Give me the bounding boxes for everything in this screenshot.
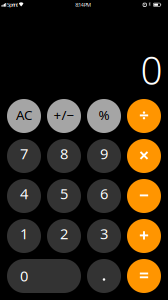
staticText: AC xyxy=(16,106,32,124)
staticText: 5 xyxy=(60,184,68,203)
button[interactable]: 3 xyxy=(87,219,121,253)
staticText: 7 xyxy=(20,144,28,163)
button[interactable]: Plus xyxy=(127,219,161,253)
staticText: 2 xyxy=(60,224,68,243)
staticText: 6 xyxy=(100,184,108,203)
button[interactable]: 2 xyxy=(47,219,81,253)
staticText: 1 xyxy=(20,224,28,243)
staticText: 8:14 PM xyxy=(75,1,91,8)
button[interactable]: 9 xyxy=(87,139,121,173)
button[interactable]: % xyxy=(87,99,121,133)
staticText: 3 xyxy=(100,224,108,243)
button[interactable]: 7 xyxy=(7,139,41,173)
button[interactable]: Divide xyxy=(127,99,161,133)
button[interactable]: Multiply xyxy=(127,139,161,173)
staticText: 9 xyxy=(100,144,108,163)
button[interactable]: AC xyxy=(7,99,41,133)
staticText: % xyxy=(98,106,109,124)
button[interactable]: 0 xyxy=(7,259,81,293)
button[interactable]: 8 xyxy=(47,139,81,173)
button[interactable]: 1 xyxy=(7,219,41,253)
staticText: 0 xyxy=(140,44,162,95)
staticText: +/− xyxy=(53,106,74,124)
button[interactable]: Decimal point xyxy=(87,259,121,293)
button[interactable]: Equals xyxy=(127,259,161,293)
button[interactable]: 4 xyxy=(7,179,41,213)
button[interactable]: 5 xyxy=(47,179,81,213)
button[interactable]: 6 xyxy=(87,179,121,213)
staticText: 4 xyxy=(20,184,28,203)
staticText: 8 xyxy=(60,144,68,163)
staticText: Sprint xyxy=(7,1,18,8)
button[interactable]: Minus xyxy=(127,179,161,213)
staticText: 0 xyxy=(20,266,28,285)
button[interactable]: +/− xyxy=(47,99,81,133)
